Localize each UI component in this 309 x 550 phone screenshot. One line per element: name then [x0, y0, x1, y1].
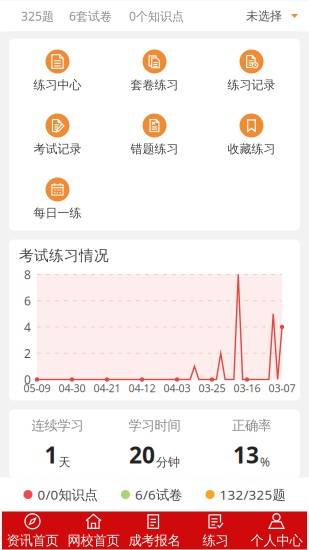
button[interactable]: 练习记录: [203, 49, 300, 91]
staticText: 套卷练习: [130, 78, 178, 92]
staticText: 03-25: [198, 381, 225, 395]
staticText: 分钟: [156, 455, 180, 470]
staticText: 05-09: [23, 381, 50, 395]
button[interactable]: 网校首页: [63, 511, 124, 549]
staticText: 个人中心: [250, 532, 302, 549]
button[interactable]: 练习: [185, 511, 246, 549]
staticText: 6套试卷: [69, 8, 112, 24]
staticText: 4: [24, 319, 31, 335]
staticText: 0个知识点: [129, 8, 184, 24]
staticText: 连续学习: [31, 417, 83, 434]
staticText: 0: [24, 371, 31, 387]
button[interactable]: 考试记录: [9, 113, 106, 155]
staticText: 132/325题: [219, 486, 285, 503]
staticText: 04-30: [58, 381, 85, 395]
staticText: 练习中心: [33, 78, 81, 92]
button[interactable]: 练习中心: [9, 49, 106, 91]
button[interactable]: 收藏练习: [203, 113, 300, 155]
staticText: 练习: [202, 532, 228, 549]
staticText: 错题练习: [130, 142, 178, 156]
staticText: 资讯首页: [6, 532, 58, 549]
staticText: 04-12: [128, 381, 155, 395]
button[interactable]: 个人中心: [246, 511, 307, 549]
staticText: %: [260, 454, 270, 470]
staticText: 正确率: [232, 417, 271, 434]
staticText: 04-21: [93, 381, 120, 395]
staticText: 04-03: [163, 381, 190, 395]
staticText: 6: [24, 293, 31, 309]
staticText: 每日一练: [33, 206, 81, 220]
staticText: 未选择: [246, 9, 282, 23]
staticText: 考试练习情况: [19, 246, 109, 264]
staticText: 6/6试卷: [135, 486, 182, 503]
staticText: 练习记录: [227, 78, 275, 92]
button[interactable]: 成考报名: [124, 511, 185, 549]
staticText: 成考报名: [128, 532, 180, 549]
staticText: 1: [44, 440, 57, 470]
staticText: 03-16: [233, 381, 260, 395]
button[interactable]: 错题练习: [106, 113, 203, 155]
button[interactable]: 未选择: [246, 9, 298, 23]
button[interactable]: 套卷练习: [106, 49, 203, 91]
staticText: 考试记录: [33, 142, 81, 156]
staticText: 0/0知识点: [37, 486, 97, 503]
staticText: 325题: [21, 8, 54, 24]
button[interactable]: 资讯首页: [2, 511, 63, 549]
staticText: 学习时间: [128, 417, 180, 434]
staticText: 03-07: [268, 381, 295, 395]
staticText: 8: [24, 266, 31, 282]
button[interactable]: 每日一练: [9, 177, 106, 219]
staticText: 20: [129, 440, 155, 470]
staticText: 天: [58, 455, 70, 470]
staticText: 2: [24, 345, 31, 361]
staticText: 网校首页: [67, 532, 119, 549]
staticText: 收藏练习: [227, 142, 275, 156]
staticText: 13: [233, 440, 259, 470]
